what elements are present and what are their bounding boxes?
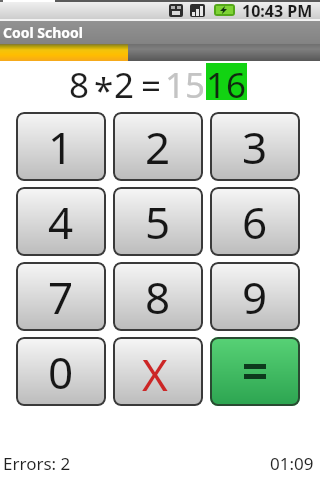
staticText: 9 (242, 267, 268, 327)
staticText: 2 (145, 117, 171, 177)
staticText: Errors: 2 (3, 452, 71, 475)
staticText: 0 (48, 342, 74, 402)
button[interactable]: 8 (113, 262, 203, 331)
button[interactable]: 3 (210, 112, 300, 181)
staticText: 15 (165, 61, 206, 109)
staticText: 5 (145, 192, 171, 252)
staticText: 10:43 PM (242, 0, 313, 22)
staticText: 3 (242, 117, 268, 177)
staticText: 4 (48, 192, 74, 252)
button[interactable]: X (113, 337, 203, 406)
staticText: Cool School (3, 23, 84, 42)
staticText: 6 (242, 192, 268, 252)
staticText: 2 (114, 61, 135, 109)
staticText: = (141, 62, 162, 110)
staticText: 8 (145, 267, 171, 327)
staticText: 7 (48, 267, 74, 327)
button[interactable] (210, 337, 300, 406)
staticText: X (142, 344, 168, 404)
staticText: * (94, 66, 114, 114)
button[interactable]: 0 (16, 337, 106, 406)
staticText: 8 (69, 61, 90, 109)
button[interactable]: 6 (210, 187, 300, 256)
button[interactable]: 1 (16, 112, 106, 181)
staticText: 01:09 (270, 452, 314, 475)
button[interactable]: 9 (210, 262, 300, 331)
button[interactable]: 2 (113, 112, 203, 181)
button[interactable]: 5 (113, 187, 203, 256)
staticText: 16 (206, 61, 247, 109)
button[interactable]: 7 (16, 262, 106, 331)
button[interactable]: 4 (16, 187, 106, 256)
staticText: 1 (48, 117, 74, 177)
